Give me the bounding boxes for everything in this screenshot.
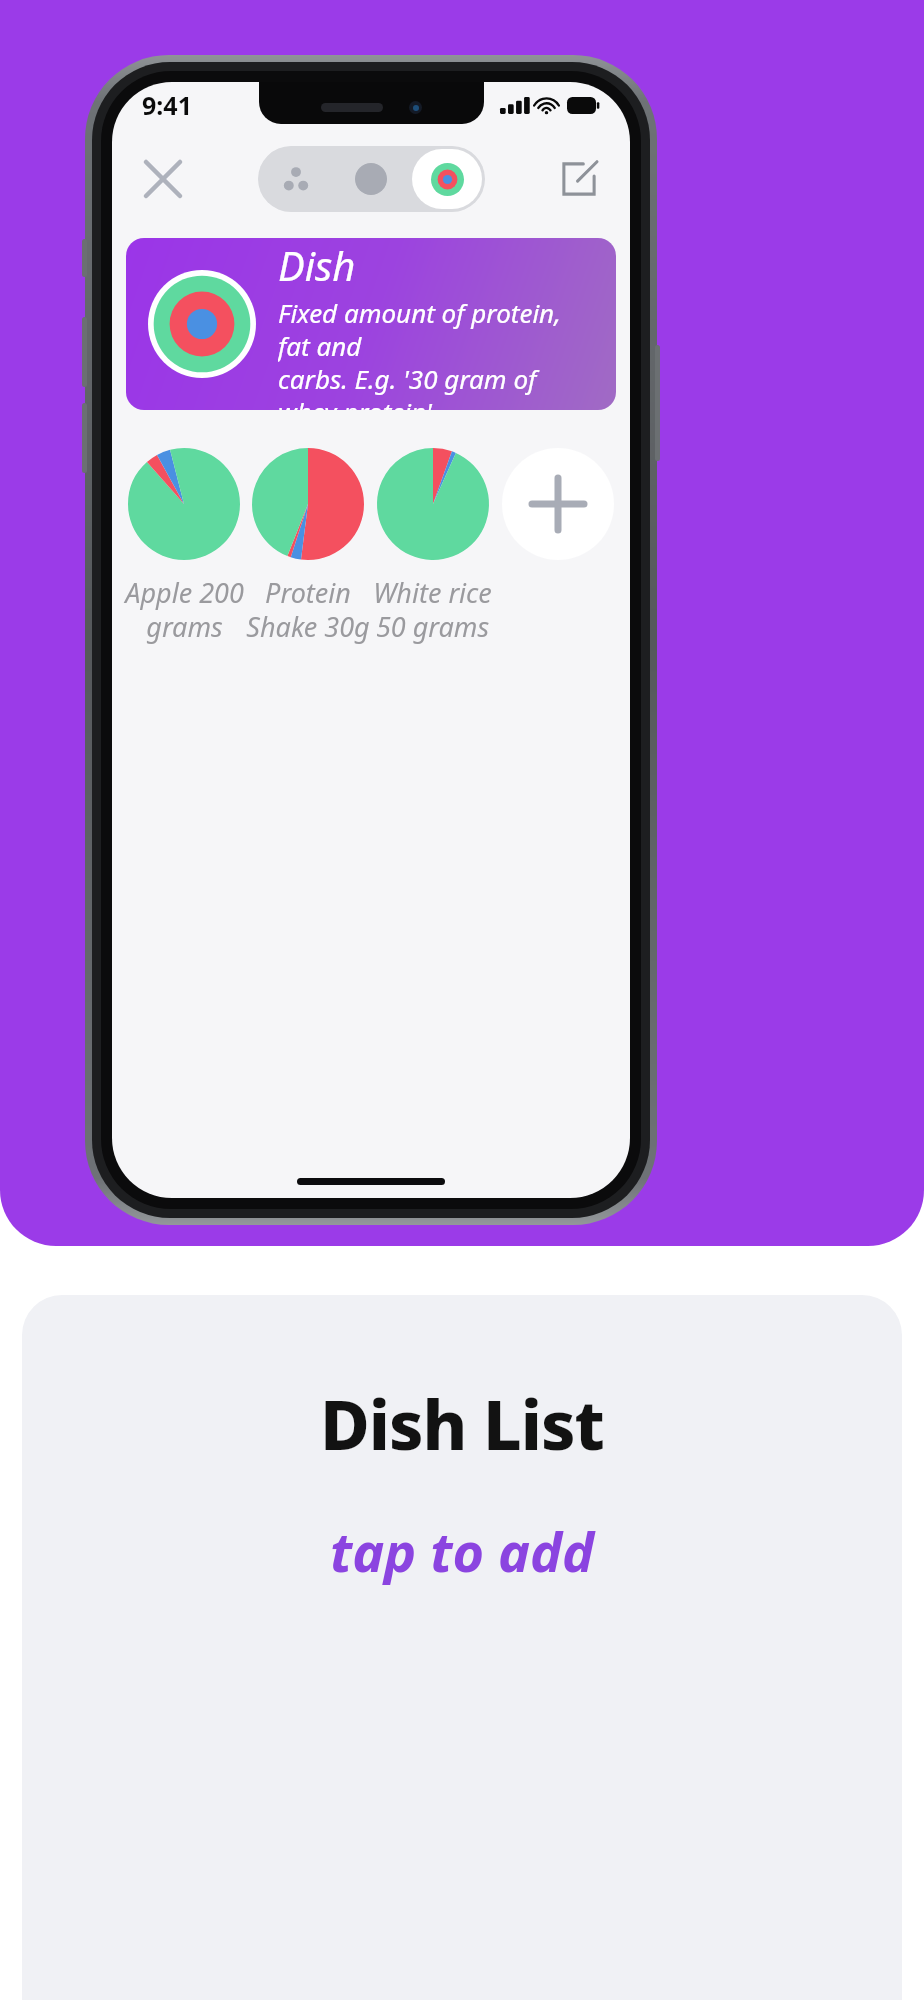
staticText: Fixed amount of protein, fat and carbs. … xyxy=(278,295,598,410)
button[interactable]: Dish xyxy=(126,238,616,410)
staticText: Dish xyxy=(278,238,356,292)
button[interactable]: Meals xyxy=(333,146,409,212)
button[interactable]: Apple 200 grams xyxy=(122,440,246,645)
button[interactable]: Ingredients xyxy=(258,146,333,212)
staticText: tap to add xyxy=(330,1514,595,1588)
button[interactable]: Dishes xyxy=(412,149,482,209)
staticText: 9:41 xyxy=(142,88,192,122)
button[interactable]: Add dish xyxy=(502,448,614,560)
staticText: Apple 200 grams xyxy=(125,574,244,645)
staticText: Dish List xyxy=(320,1377,604,1470)
button[interactable]: White rice 50 grams xyxy=(370,440,495,645)
staticText: White rice 50 grams xyxy=(373,574,492,645)
button[interactable]: Edit xyxy=(548,148,610,210)
staticText: Protein Shake 30g xyxy=(246,574,370,645)
button[interactable]: Protein Shake 30g xyxy=(246,440,370,645)
button[interactable]: Close xyxy=(132,148,194,210)
